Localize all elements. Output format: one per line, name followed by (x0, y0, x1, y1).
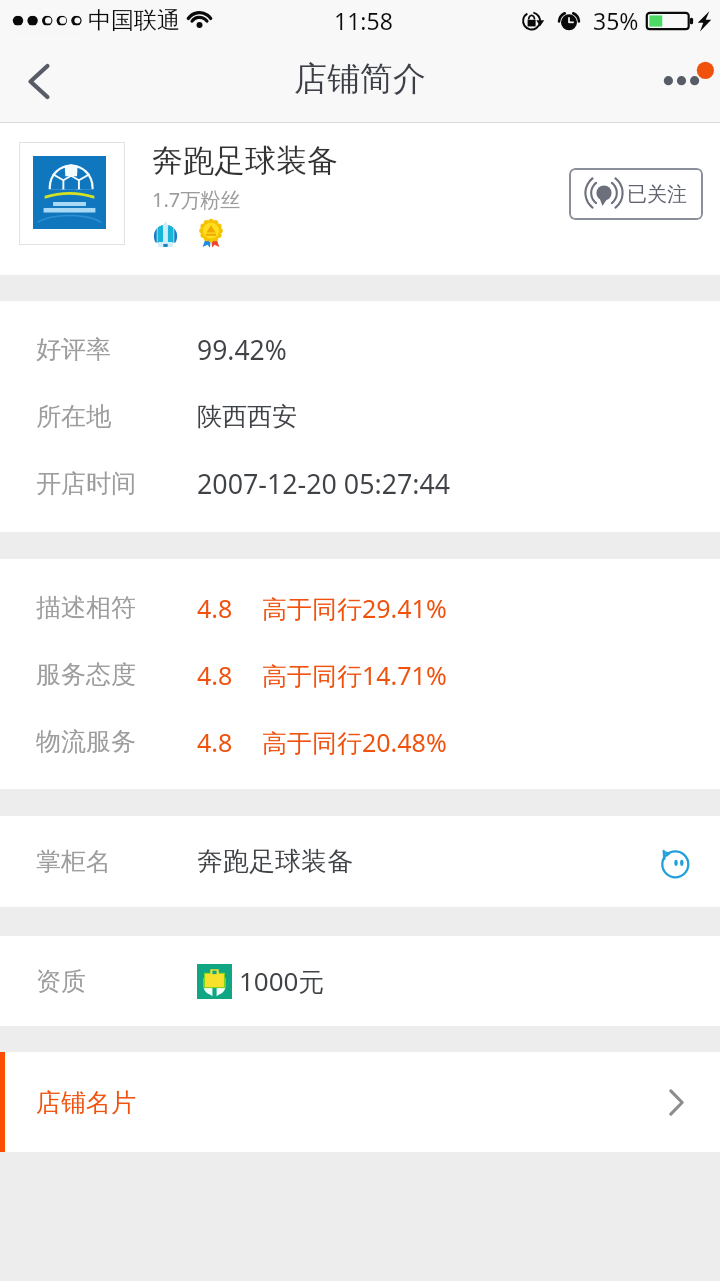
staticText: 2007-12-20 05:27:44 (197, 465, 451, 502)
staticText: 4.8 (197, 658, 233, 692)
staticText: 资质 (36, 966, 86, 997)
staticText: 服务态度 (36, 659, 136, 690)
staticText: 店铺简介 (294, 58, 426, 100)
staticText: 开店时间 (36, 468, 136, 499)
staticText: 好评率 (36, 334, 111, 365)
button[interactable]: 好评率 (0, 316, 720, 383)
button[interactable]: 物流服务 (0, 708, 720, 775)
button[interactable]: 资质 (0, 936, 720, 1026)
staticText: 奔跑足球装备 (152, 141, 338, 180)
staticText: 陕西西安 (197, 401, 297, 432)
staticText: 奔跑足球装备 (197, 845, 353, 878)
staticText: 高于同行29.41% (262, 591, 447, 625)
button[interactable]: Chat with seller (652, 842, 692, 882)
staticText: 描述相符 (36, 592, 136, 623)
staticText: 35% (593, 5, 639, 36)
staticText: 掌柜名 (36, 846, 111, 877)
staticText: 高于同行20.48% (262, 725, 447, 759)
button[interactable]: 服务态度 (0, 641, 720, 708)
staticText: 1000元 (239, 963, 325, 999)
staticText: 店铺名片 (36, 1087, 136, 1118)
staticText: 1.7万粉丝 (152, 186, 241, 213)
button[interactable]: 所在地 (0, 383, 720, 450)
button[interactable]: 描述相符 (0, 574, 720, 641)
button[interactable]: More options (634, 40, 720, 122)
staticText: 4.8 (197, 591, 233, 625)
button[interactable]: 奔跑足球装备 (0, 123, 720, 275)
button[interactable]: 掌柜名 (0, 816, 720, 907)
staticText: 所在地 (36, 401, 111, 432)
staticText: 中国联通 (88, 6, 180, 35)
button[interactable]: 已关注 (569, 168, 703, 220)
staticText: 高于同行14.71% (262, 658, 447, 692)
staticText: 11:58 (334, 5, 393, 36)
button[interactable]: 开店时间 (0, 450, 720, 517)
staticText: 已关注 (627, 182, 687, 207)
button[interactable]: Back (0, 40, 76, 122)
staticText: 99.42% (197, 332, 287, 368)
staticText: 4.8 (197, 725, 233, 759)
staticText: 物流服务 (36, 726, 136, 757)
button[interactable]: 店铺名片 (0, 1052, 720, 1152)
